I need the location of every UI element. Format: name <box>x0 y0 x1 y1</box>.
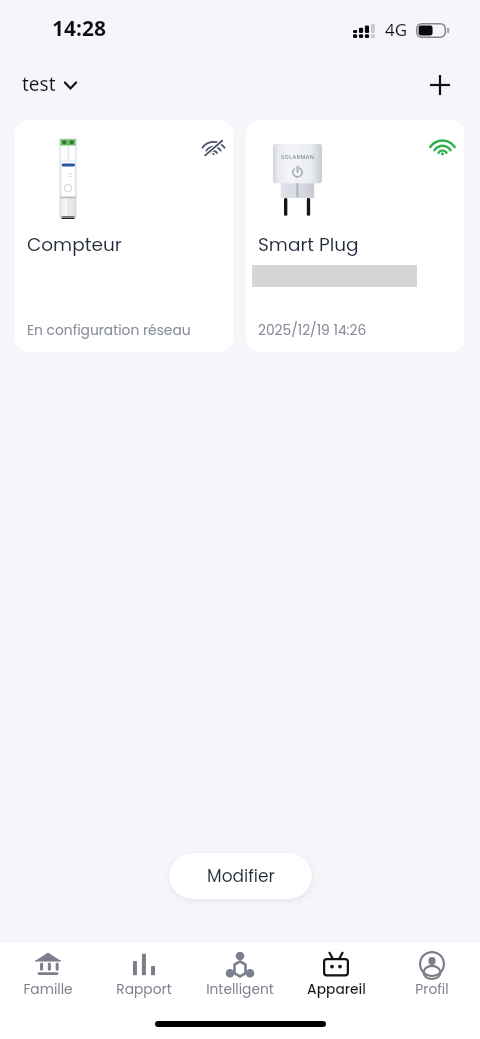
button[interactable]: Compteur <box>15 120 233 352</box>
staticText: 14:28 <box>52 14 106 43</box>
staticText: Appareil <box>307 980 366 999</box>
staticText: Intelligent <box>206 980 274 999</box>
staticText: Modifier <box>207 864 275 888</box>
staticText: 2025/12/19 14:26 <box>258 321 367 340</box>
staticText: SOLARMAN <box>281 153 315 160</box>
button[interactable]: Intelligent <box>192 944 288 1002</box>
button[interactable]: Appareil <box>288 944 384 1002</box>
staticText: 4G <box>385 18 408 41</box>
staticText: Smart Plug <box>258 232 359 258</box>
staticText: test <box>22 71 56 97</box>
staticText: Famille <box>23 980 73 999</box>
button[interactable]: Profil <box>384 944 480 1002</box>
staticText: Compteur <box>27 232 122 258</box>
button[interactable]: Rapport <box>96 944 192 1002</box>
button[interactable]: Modifier <box>169 853 312 899</box>
button[interactable]: Add device <box>422 67 458 103</box>
button[interactable]: Famille <box>0 944 96 1002</box>
button[interactable]: test <box>20 65 79 103</box>
button[interactable]: SOLARMAN <box>246 120 464 352</box>
staticText: Rapport <box>116 980 172 999</box>
staticText: En configuration réseau <box>27 321 191 340</box>
staticText: Profil <box>415 980 449 999</box>
